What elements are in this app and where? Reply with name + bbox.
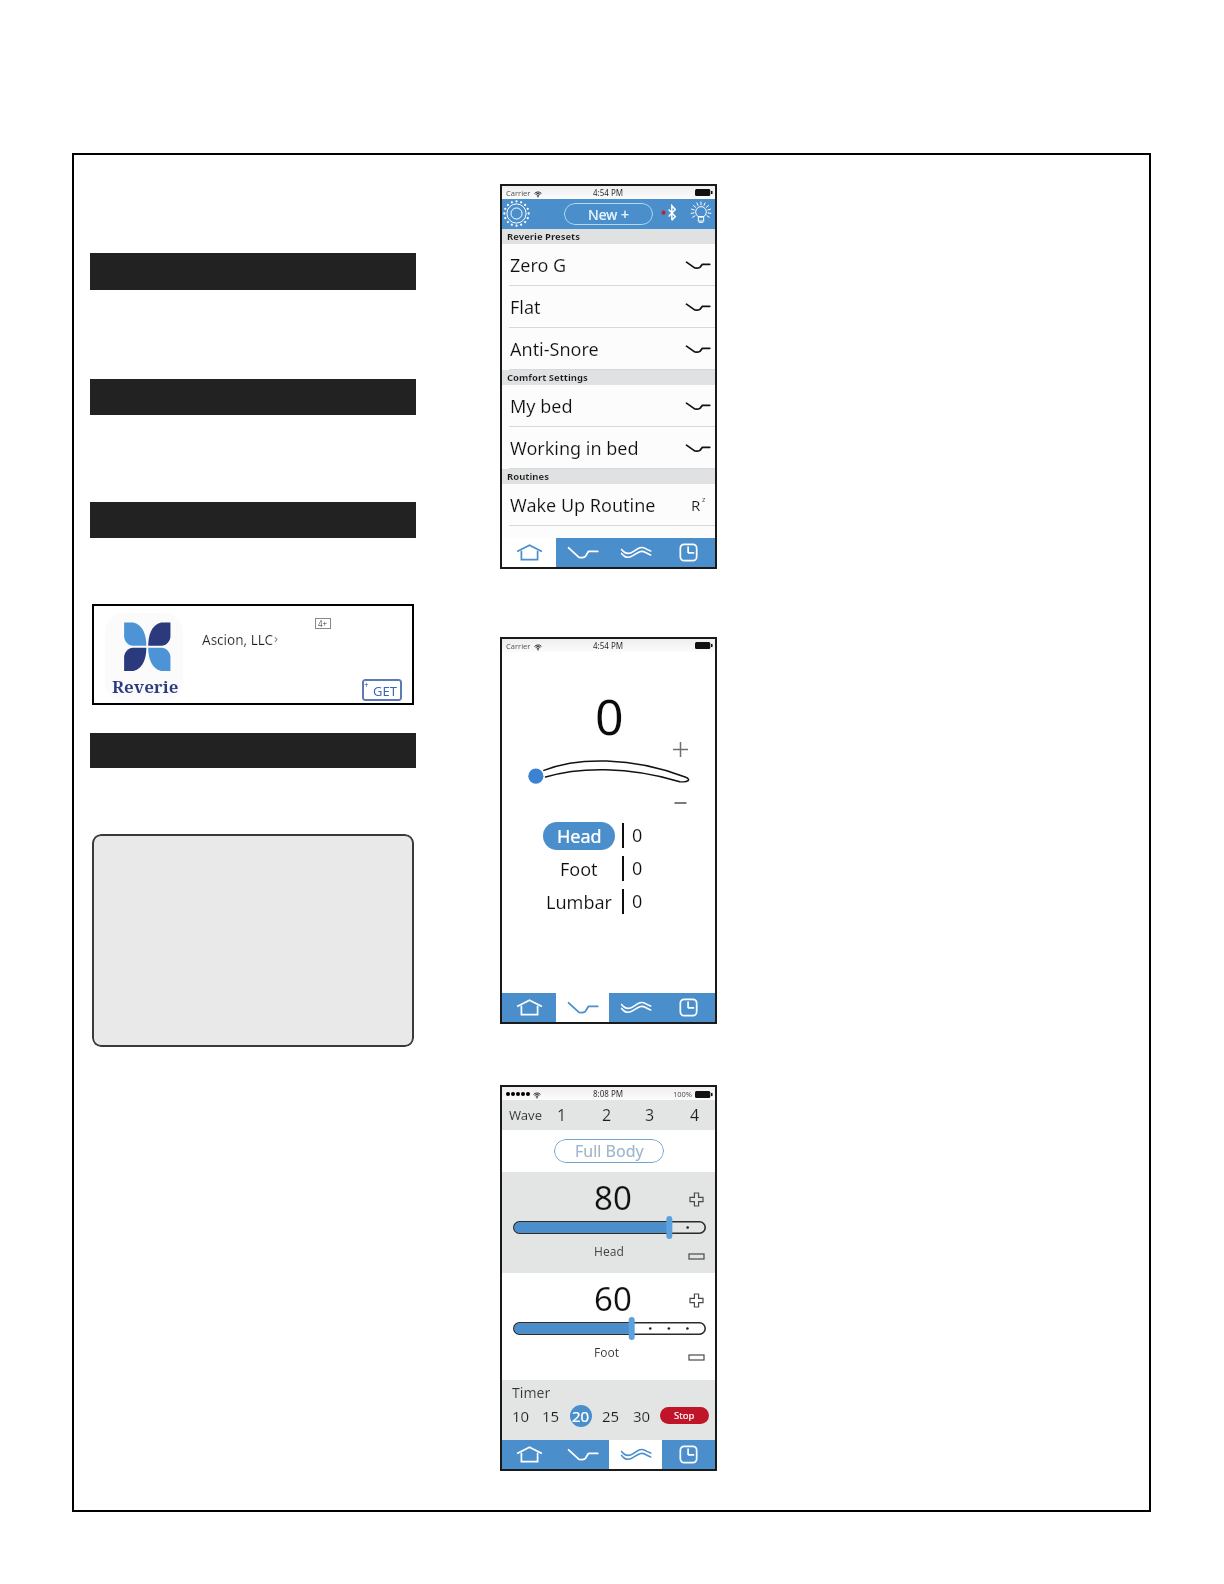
button[interactable]: Working in bed: [502, 427, 715, 469]
button[interactable]: Zero G: [502, 244, 715, 286]
button[interactable]: GET: [362, 679, 402, 701]
button[interactable]: Decrease Foot: [689, 1355, 704, 1360]
button[interactable]: Bluetooth: [660, 205, 676, 221]
button[interactable]: My bed: [502, 385, 715, 427]
button[interactable]: Light: [688, 200, 714, 226]
staticText: Reverie: [112, 675, 179, 698]
staticText: Carrier: [506, 188, 531, 198]
button[interactable]: Increase Foot: [690, 1294, 703, 1307]
staticText: 4+: [318, 618, 328, 629]
button[interactable]: Full Body: [554, 1139, 664, 1163]
staticText: 0: [632, 823, 643, 848]
button[interactable]: Head: [543, 822, 615, 850]
staticText: z: [702, 495, 706, 505]
staticText: Timer: [512, 1383, 551, 1402]
staticText: +: [364, 679, 369, 690]
button[interactable]: Decrease Head: [689, 1254, 704, 1259]
staticText: 0: [632, 889, 643, 914]
staticText: New +: [588, 205, 629, 224]
staticText: Flat: [510, 295, 541, 320]
staticText: Wake Up Routine: [510, 493, 656, 518]
button[interactable]: Flat: [502, 286, 715, 328]
button[interactable]: Wave: [508, 1100, 544, 1130]
button[interactable]: Increase: [673, 742, 688, 757]
staticText: 80: [594, 1175, 632, 1220]
staticText: R: [691, 495, 701, 515]
button[interactable]: 1: [548, 1100, 576, 1130]
button[interactable]: 10: [510, 1405, 532, 1427]
button[interactable]: Timer: [662, 1440, 715, 1469]
staticText: Anti-Snore: [510, 337, 599, 362]
staticText: 3: [645, 1104, 655, 1126]
button[interactable]: Massage: [609, 1440, 662, 1469]
staticText: 4:54 PM: [593, 187, 624, 198]
button[interactable]: New +: [564, 203, 653, 225]
button[interactable]: Timer: [662, 993, 715, 1022]
staticText: Head: [557, 824, 602, 849]
button[interactable]: Massage: [609, 993, 662, 1022]
staticText: 10: [512, 1406, 530, 1426]
button[interactable]: Timer: [662, 538, 715, 567]
staticText: 30: [633, 1406, 651, 1426]
button[interactable]: Home: [502, 1440, 556, 1469]
staticText: Full Body: [575, 1140, 644, 1162]
button[interactable]: 20: [570, 1405, 592, 1427]
button[interactable]: Foot: [543, 855, 615, 883]
button[interactable]: Reverie: [92, 604, 414, 705]
button[interactable]: Stop: [660, 1407, 709, 1424]
button[interactable]: Positions: [556, 538, 609, 567]
staticText: GET: [373, 682, 397, 700]
staticText: 60: [594, 1276, 632, 1321]
staticText: 8:08 PM: [593, 1088, 624, 1099]
staticText: 15: [542, 1406, 560, 1426]
staticText: 4: [690, 1104, 700, 1126]
staticText: ›: [274, 629, 279, 647]
staticText: 0: [632, 856, 643, 881]
button[interactable]: 30: [631, 1405, 653, 1427]
button[interactable]: Lumbar: [543, 888, 615, 916]
button[interactable]: 3: [636, 1100, 664, 1130]
button[interactable]: Home: [502, 993, 556, 1022]
button[interactable]: Home: [502, 538, 556, 567]
staticText: Wave: [509, 1106, 543, 1124]
staticText: Head: [594, 1243, 624, 1259]
staticText: 1: [557, 1104, 567, 1126]
staticText: My bed: [510, 394, 573, 419]
staticText: Routines: [507, 470, 549, 483]
button[interactable]: Decrease: [673, 800, 688, 806]
button[interactable]: Increase Head: [690, 1193, 703, 1206]
staticText: 100%: [673, 1089, 693, 1099]
button[interactable]: 2: [593, 1100, 621, 1130]
staticText: Foot: [560, 857, 598, 882]
staticText: Stop: [674, 1409, 695, 1422]
staticText: Lumbar: [546, 890, 612, 915]
button[interactable]: Massage: [609, 538, 662, 567]
staticText: 0: [595, 682, 624, 750]
staticText: Carrier: [506, 641, 531, 651]
staticText: 20: [572, 1406, 590, 1426]
button[interactable]: Positions: [556, 993, 609, 1022]
staticText: Foot: [594, 1344, 620, 1360]
staticText: Reverie Presets: [507, 230, 580, 243]
button[interactable]: Anti-Snore: [502, 328, 715, 370]
button[interactable]: Wake Up Routine: [502, 484, 715, 526]
button[interactable]: 4: [681, 1100, 709, 1130]
button[interactable]: 25: [600, 1405, 622, 1427]
button[interactable]: 15: [540, 1405, 562, 1427]
staticText: Comfort Settings: [507, 371, 588, 384]
staticText: 4:54 PM: [593, 640, 624, 651]
staticText: 25: [602, 1406, 620, 1426]
staticText: Ascion, LLC: [202, 631, 274, 649]
staticText: 2: [602, 1104, 612, 1126]
button[interactable]: Settings: [503, 200, 530, 227]
staticText: Working in bed: [510, 436, 639, 461]
staticText: Zero G: [510, 253, 567, 278]
button[interactable]: Positions: [556, 1440, 609, 1469]
